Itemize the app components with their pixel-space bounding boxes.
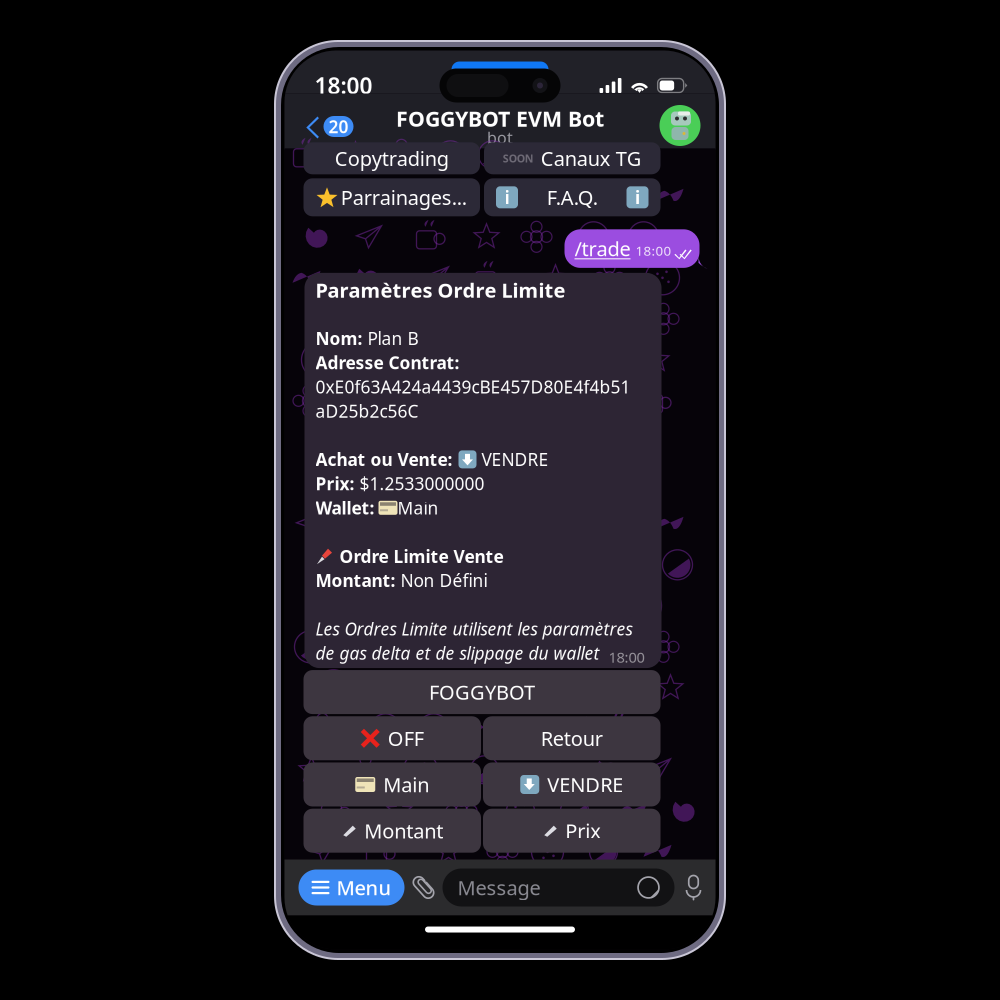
staticText: FOGGYBOT EVM Bot [396,104,604,133]
staticText: Paramètres Ordre Limite [315,277,565,303]
staticText: de gas delta et de slippage du wallet [315,641,599,664]
staticText: Montant: [315,569,395,592]
staticText: Ordre Limite Vente [339,545,503,568]
staticText: Les Ordres Limite utilisent les paramètr… [315,617,632,640]
button[interactable]: Montant [303,809,481,853]
staticText: i [504,186,509,209]
staticText: Wallet: [315,496,374,519]
button[interactable]: 20 [284,93,361,149]
staticText: Achat ou Vente: [315,448,452,471]
staticText: Nom: [315,327,362,350]
staticText: Parrainages... [341,184,467,211]
staticText: Adresse Contrat: [315,351,459,374]
staticText: OFF [388,725,424,752]
staticText: Prix [565,817,601,844]
staticText: bot [487,127,513,148]
staticText: Montant [364,817,443,844]
button[interactable]: Prix [483,809,660,853]
staticText: Copytrading [335,145,449,172]
staticText: VENDRE [476,448,548,471]
staticText: 0xE0f63A424a4439cBE457D80E4f4b51 [315,375,630,398]
staticText: F.A.Q. [547,184,598,211]
button[interactable]: Copytrading [303,142,480,174]
button[interactable]: FOGGYBOT [303,670,660,714]
staticText: Prix: [315,472,354,495]
staticText: Retour [541,725,603,752]
staticText: /trade [574,235,630,262]
staticText: 18:00 [635,242,671,259]
button[interactable]: Retour [483,716,660,760]
staticText: Plan B [362,327,418,350]
button[interactable]: Menu [298,869,404,905]
staticText: TELEGRAM [475,74,539,90]
button[interactable]: Parrainages... [303,178,480,216]
staticText: Canaux TG [541,145,642,172]
button[interactable]: i [484,178,660,216]
staticText: i [635,186,640,209]
button[interactable]: SOON [484,142,660,174]
staticText: SOON [503,151,534,165]
button[interactable]: Main [303,762,481,806]
staticText: 18:00 [314,70,372,100]
button[interactable]: Record voice message [684,874,702,900]
button[interactable]: Stickers [637,876,659,898]
staticText: FOGGYBOT [429,679,535,705]
staticText: Main [397,496,438,519]
staticText: $1.2533000000 [354,472,484,495]
staticText: Main [383,771,429,798]
button[interactable]: VENDRE [483,762,660,806]
staticText: aD25b2c56C [315,399,418,422]
staticText: 20 [328,115,348,138]
staticText: Message [457,874,540,901]
staticText: VENDRE [547,771,623,798]
staticText: Menu [336,874,391,901]
staticText: Non Défini [395,569,487,592]
button[interactable]: Attach file [411,874,435,900]
button[interactable]: OFF [303,716,481,760]
staticText: 18:00 [608,647,644,667]
button[interactable]: Bot profile [659,101,715,142]
